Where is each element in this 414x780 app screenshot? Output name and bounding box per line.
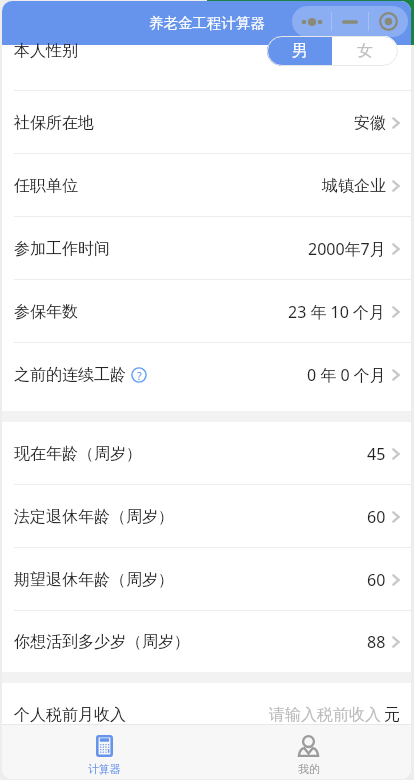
- staticText: 我的: [298, 762, 320, 776]
- button[interactable]: 本人性别: [2, 45, 411, 91]
- staticText: 参保年数: [14, 302, 78, 322]
- staticText: 任职单位: [14, 176, 78, 196]
- staticText: 88: [367, 631, 386, 653]
- button[interactable]: 任职单位: [2, 154, 411, 217]
- staticText: 之前的连续工龄: [14, 365, 126, 385]
- button[interactable]: 我的: [206, 725, 411, 779]
- staticText: 个人税前月收入: [14, 705, 126, 725]
- staticText: 计算器: [88, 762, 121, 776]
- staticText: 城镇企业: [322, 176, 386, 196]
- button[interactable]: More options: [292, 6, 331, 37]
- button[interactable]: 现在年龄（周岁）: [2, 422, 411, 485]
- staticText: 2000年7月: [308, 238, 386, 260]
- button[interactable]: 社保所在地: [2, 91, 411, 154]
- button[interactable]: 期望退休年龄（周岁）: [2, 548, 411, 611]
- button[interactable]: 你想活到多少岁（周岁）: [2, 611, 411, 672]
- staticText: 社保所在地: [14, 113, 94, 133]
- staticText: 现在年龄（周岁）: [14, 444, 142, 464]
- staticText: 法定退休年龄（周岁）: [14, 507, 174, 527]
- staticText: 60: [367, 506, 386, 528]
- staticText: 安徽: [354, 113, 386, 133]
- staticText: 参加工作时间: [14, 239, 110, 259]
- button[interactable]: 参保年数: [2, 280, 411, 343]
- staticText: 60: [367, 569, 386, 591]
- button[interactable]: 法定退休年龄（周岁）: [2, 485, 411, 548]
- staticText: ?: [137, 368, 142, 383]
- staticText: 请输入税前收入: [269, 705, 381, 725]
- button[interactable]: Minimize: [332, 6, 368, 37]
- button[interactable]: 男: [267, 36, 332, 66]
- staticText: 本人性别: [14, 41, 78, 61]
- button[interactable]: 计算器: [2, 725, 206, 779]
- button[interactable]: 之前的连续工龄: [2, 343, 411, 411]
- staticText: 元: [384, 705, 400, 725]
- staticText: 养老金工程计算器: [149, 14, 265, 32]
- staticText: 期望退休年龄（周岁）: [14, 570, 174, 590]
- button[interactable]: 个人税前月收入: [2, 683, 411, 724]
- staticText: 0 年 0 个月: [307, 364, 386, 386]
- button[interactable]: Close: [369, 6, 408, 37]
- staticText: 男: [292, 41, 308, 61]
- button[interactable]: 女: [332, 36, 398, 66]
- staticText: 45: [367, 443, 386, 465]
- staticText: 女: [357, 41, 373, 61]
- button[interactable]: 参加工作时间: [2, 217, 411, 280]
- staticText: 你想活到多少岁（周岁）: [14, 632, 190, 652]
- staticText: 23 年 10 个月: [288, 301, 386, 323]
